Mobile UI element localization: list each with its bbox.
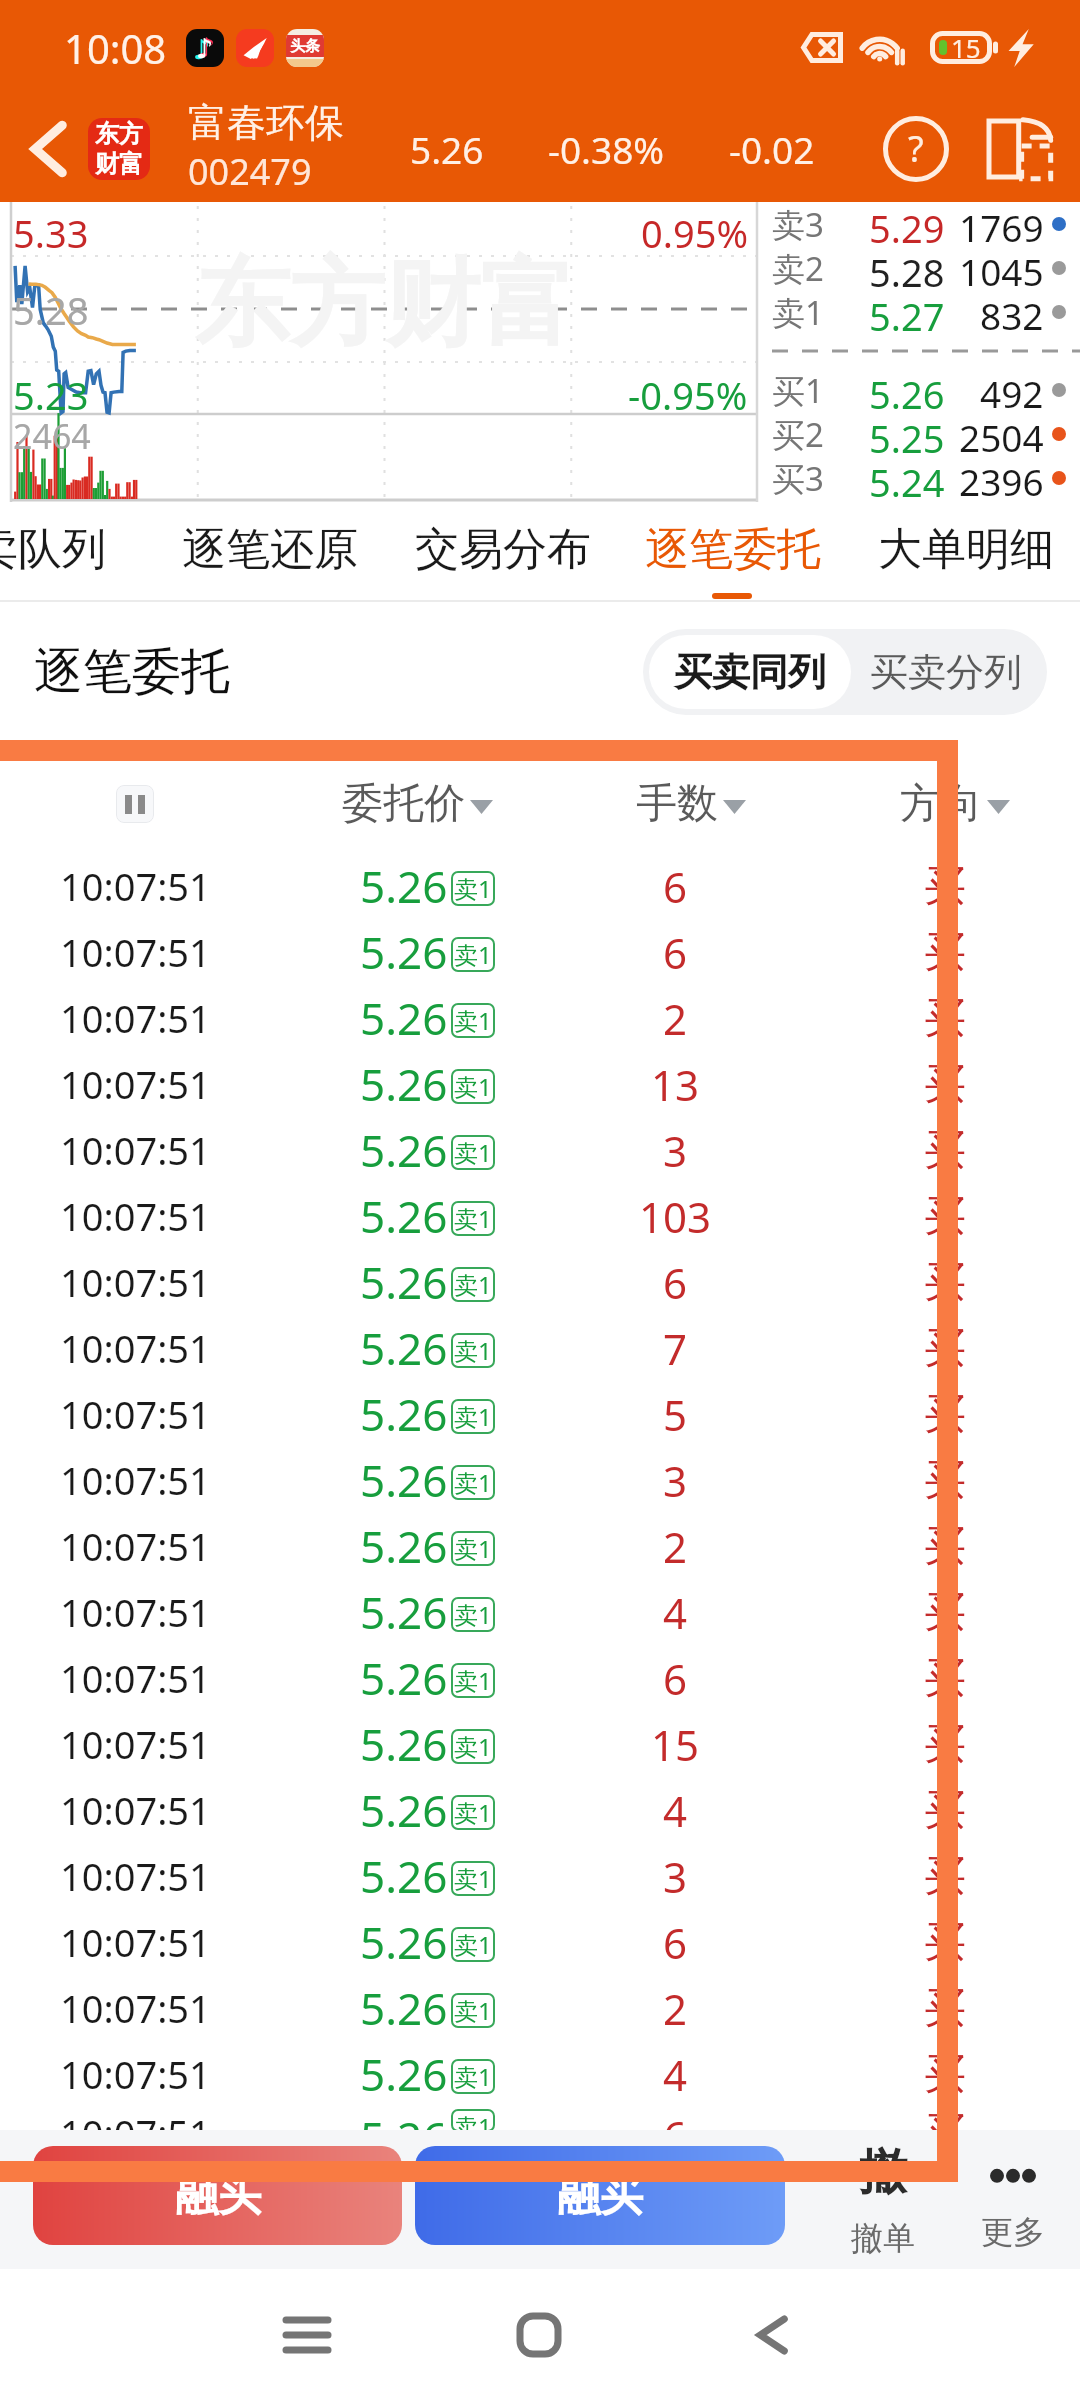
- staticText: 0.95%: [641, 207, 748, 259]
- staticText: 10:07:51: [60, 1652, 211, 1704]
- staticText: 1769: [959, 202, 1044, 246]
- button[interactable]: 更多: [948, 2130, 1078, 2269]
- button[interactable]: 10:07:51: [0, 2041, 1080, 2107]
- staticText: 委托价: [342, 778, 465, 830]
- button[interactable]: 10:07:51: [0, 1909, 1080, 1975]
- staticText: 买: [924, 2048, 966, 2101]
- staticText: 5.26: [360, 2044, 448, 2104]
- staticText: 5.26: [360, 988, 448, 1048]
- staticText: 7: [663, 1320, 688, 1377]
- staticText: 卖1: [454, 1598, 492, 1631]
- button[interactable]: Recents: [237, 2269, 377, 2400]
- staticText: 10:07:51: [60, 2048, 211, 2100]
- button[interactable]: 大单明细: [878, 502, 1054, 588]
- button[interactable]: 10:07:51: [0, 1381, 1080, 1447]
- button[interactable]: 10:07:51: [0, 1975, 1080, 2041]
- staticText: 买: [924, 1916, 966, 1969]
- staticText: 逐笔委托: [34, 641, 230, 703]
- staticText: 10:07:51: [60, 1982, 211, 2034]
- button[interactable]: 10:07:51: [0, 985, 1080, 1051]
- button[interactable]: 10:07:51: [0, 853, 1080, 919]
- button[interactable]: 委托价: [270, 748, 540, 859]
- staticText: 6: [663, 924, 688, 981]
- staticText: 卖1: [454, 1796, 492, 1829]
- button[interactable]: 买2: [758, 412, 1080, 456]
- staticText: 买卖同列: [674, 648, 826, 696]
- staticText: 10:07:51: [60, 1520, 211, 1572]
- staticText: 卖1: [454, 1202, 492, 1235]
- staticText: 10:07:51: [60, 860, 211, 912]
- staticText: 10:07:51: [60, 1850, 211, 1902]
- staticText: 5.26: [360, 1912, 448, 1972]
- staticText: 1045: [959, 246, 1044, 290]
- staticText: 10:07:51: [60, 1058, 211, 1110]
- button[interactable]: 10:07:51: [0, 2107, 1080, 2130]
- button[interactable]: 买卖同列: [649, 635, 851, 709]
- staticText: 卖1: [454, 1730, 492, 1763]
- button[interactable]: 卖3: [758, 202, 1080, 246]
- staticText: 10:07:51: [60, 1784, 211, 1836]
- button[interactable]: 10:07:51: [0, 1447, 1080, 1513]
- button[interactable]: 10:07:51: [0, 1777, 1080, 1843]
- button[interactable]: 10:07:51: [0, 919, 1080, 985]
- button[interactable]: 融买: [415, 2146, 785, 2245]
- button[interactable]: Back: [702, 2269, 842, 2400]
- staticText: 5.26: [360, 1582, 448, 1642]
- button[interactable]: 融头: [33, 2146, 402, 2245]
- button[interactable]: Help: [872, 105, 960, 193]
- staticText: 2504: [959, 412, 1044, 456]
- staticText: 买: [924, 1388, 966, 1441]
- staticText: 6: [663, 1914, 688, 1971]
- staticText: 10:07:51: [60, 1718, 211, 1770]
- button[interactable]: 手数: [540, 748, 810, 859]
- button[interactable]: Home: [469, 2269, 609, 2400]
- button[interactable]: Back: [8, 109, 88, 189]
- staticText: 买: [924, 1982, 966, 2035]
- button[interactable]: 10:07:51: [0, 1117, 1080, 1183]
- button[interactable]: 方向: [810, 748, 1080, 859]
- button[interactable]: 卖1: [758, 290, 1080, 334]
- staticText: 5.24: [869, 456, 945, 500]
- button[interactable]: 10:07:51: [0, 1315, 1080, 1381]
- staticText: 5: [663, 1386, 688, 1443]
- button[interactable]: 10:07:51: [0, 1183, 1080, 1249]
- button[interactable]: 买卖分列: [851, 635, 1041, 709]
- staticText: 卖1: [454, 938, 492, 971]
- staticText: 5.26: [360, 922, 448, 982]
- staticText: 3: [663, 1452, 688, 1509]
- staticText: 买: [924, 1256, 966, 1309]
- button[interactable]: Rotate screen: [972, 102, 1066, 196]
- button[interactable]: 撤: [818, 2130, 948, 2269]
- button[interactable]: 买3: [758, 456, 1080, 500]
- staticText: 卖1: [454, 1664, 492, 1697]
- button[interactable]: 卖队列: [0, 502, 128, 588]
- staticText: 撤: [859, 2142, 907, 2202]
- staticText: 买: [924, 1652, 966, 1705]
- button[interactable]: 逐笔还原: [182, 502, 358, 588]
- staticText: 5.26: [869, 368, 945, 412]
- staticText: 融买: [557, 2169, 643, 2223]
- staticText: 103: [639, 1188, 712, 1245]
- button[interactable]: 交易分布: [415, 502, 591, 588]
- button[interactable]: 10:07:51: [0, 1843, 1080, 1909]
- button[interactable]: 10:07:51: [0, 1579, 1080, 1645]
- button[interactable]: 逐笔委托: [645, 502, 821, 588]
- staticText: 5.26: [360, 1780, 448, 1840]
- button[interactable]: 卖2: [758, 246, 1080, 290]
- button[interactable]: 10:07:51: [0, 1711, 1080, 1777]
- staticText: 4: [663, 2046, 688, 2103]
- staticText: 撤单: [851, 2218, 915, 2258]
- button[interactable]: 10:07:51: [0, 1249, 1080, 1315]
- staticText: 4: [663, 1782, 688, 1839]
- staticText: 卖1: [454, 1136, 492, 1169]
- staticText: 卖1: [454, 1070, 492, 1103]
- button[interactable]: 买1: [758, 368, 1080, 412]
- staticText: 002479: [188, 147, 312, 196]
- staticText: 2: [663, 1518, 688, 1575]
- button[interactable]: 10:07:51: [0, 1645, 1080, 1711]
- button[interactable]: 10:07:51: [0, 1051, 1080, 1117]
- button[interactable]: 10:07:51: [0, 1513, 1080, 1579]
- button[interactable]: Pause: [116, 785, 154, 823]
- staticText: 5.26: [360, 1186, 448, 1246]
- staticText: 10:07:51: [60, 1124, 211, 1176]
